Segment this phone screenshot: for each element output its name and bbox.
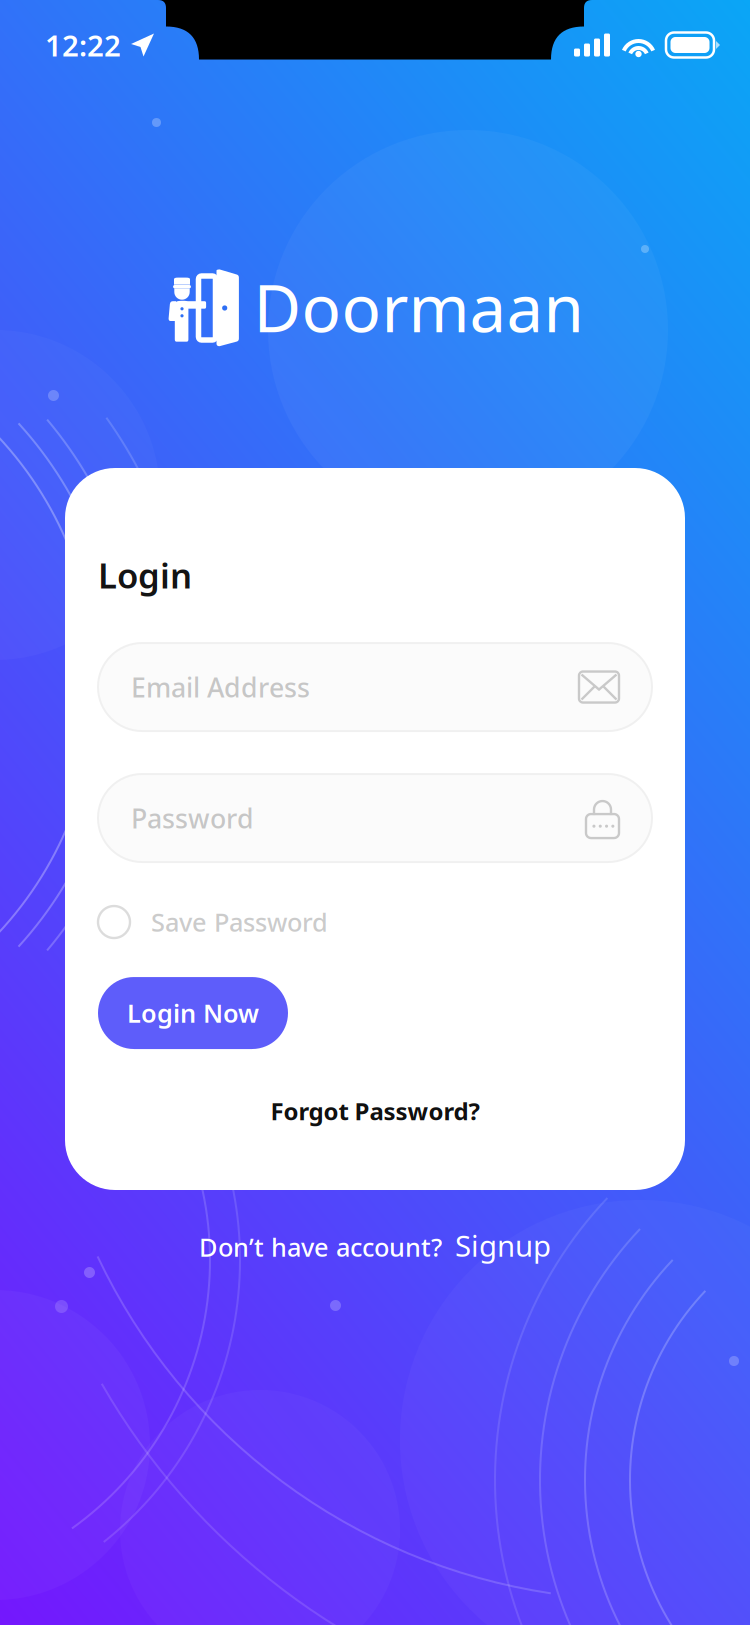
staticText: Save Password xyxy=(151,905,328,939)
staticText: Signup xyxy=(455,1226,551,1265)
staticText: 12:22 xyxy=(45,25,121,64)
staticText: Doormaan xyxy=(253,264,583,350)
staticText: Login xyxy=(98,552,192,598)
button[interactable]: Save Password xyxy=(98,906,652,938)
staticText: Don’t have account? xyxy=(199,1230,442,1264)
button[interactable]: Signup xyxy=(455,1226,551,1265)
button[interactable]: Password xyxy=(98,774,652,862)
staticText: Forgot Password? xyxy=(270,1095,479,1127)
staticText: Password xyxy=(131,800,254,836)
button[interactable]: Email Address xyxy=(98,643,652,731)
staticText: Email Address xyxy=(131,669,310,705)
staticText: Login Now xyxy=(127,996,259,1030)
button[interactable]: Forgot Password? xyxy=(270,1095,479,1127)
button[interactable]: Login Now xyxy=(98,977,288,1049)
